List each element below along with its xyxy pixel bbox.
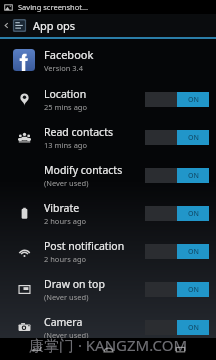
staticText: App ops [33, 18, 76, 33]
button[interactable]: Camera [0, 308, 216, 346]
button[interactable]: Home [72, 338, 144, 360]
button[interactable]: Post notification [0, 232, 216, 270]
button[interactable]: Toggle permission [145, 282, 209, 297]
staticText: (Never used) [44, 178, 89, 188]
staticText: 2 hours ago [44, 254, 87, 264]
staticText: ON [188, 95, 199, 105]
staticText: Version 3.4 [44, 63, 83, 73]
staticText: Post notification [44, 239, 125, 253]
button[interactable]: Toggle permission [145, 320, 209, 335]
staticText: 康掌门 · KANGZM.COM [29, 335, 187, 355]
staticText: Camera [44, 315, 83, 329]
staticText: 2 hours ago [44, 216, 87, 226]
staticText: ON [188, 285, 199, 295]
staticText: 25 mins ago [44, 102, 88, 112]
button[interactable]: Toggle permission [145, 206, 209, 221]
staticText: ON [188, 133, 199, 143]
staticText: Read contacts [44, 125, 113, 139]
button[interactable]: Modify contacts [0, 156, 216, 194]
staticText: (Never used) [44, 330, 89, 340]
button[interactable]: Draw on top [0, 270, 216, 308]
staticText: Facebook [44, 47, 94, 62]
button[interactable]: Recent apps [144, 338, 216, 360]
button[interactable]: Toggle permission [145, 244, 209, 259]
button[interactable]: Toggle permission [145, 168, 209, 183]
staticText: ON [188, 323, 199, 333]
button[interactable]: Facebook [0, 40, 216, 80]
staticText: ON [188, 247, 199, 257]
staticText: 13 mins ago [44, 140, 88, 150]
staticText: Draw on top [44, 277, 105, 291]
staticText: Vibrate [44, 201, 80, 215]
button[interactable]: Toggle permission [145, 130, 209, 145]
button[interactable]: Location [0, 80, 216, 118]
button[interactable]: Navigate up [0, 14, 27, 37]
staticText: Modify contacts [44, 163, 123, 177]
button[interactable]: Vibrate [0, 194, 216, 232]
staticText: Location [44, 87, 87, 101]
staticText: ON [188, 171, 199, 181]
staticText: Saving screenshot... [18, 2, 89, 12]
button[interactable]: Toggle permission [145, 92, 209, 107]
button[interactable]: Read contacts [0, 118, 216, 156]
staticText: ON [188, 209, 199, 219]
staticText: (Never used) [44, 292, 89, 302]
button[interactable]: Back [0, 338, 72, 360]
